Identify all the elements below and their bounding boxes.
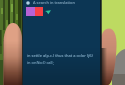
other: Send [45, 9, 51, 15]
staticText: in settle a(p.c.) thus that a color (j6) [27, 53, 93, 58]
button[interactable]: Status bar [26, 0, 100, 5]
button[interactable]: Send [26, 7, 51, 16]
staticText: A search in translation [33, 0, 75, 5]
staticText: in onNo:() call; [27, 60, 54, 65]
